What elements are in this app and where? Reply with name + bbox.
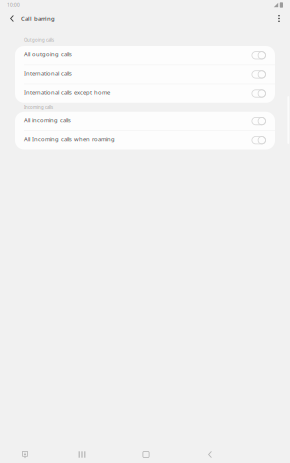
- button[interactable]: All outgoing calls: [15, 46, 275, 65]
- staticText: International calls: [24, 69, 72, 77]
- staticText: Incoming calls: [24, 104, 53, 110]
- button[interactable]: All Incoming calls when roaming: [15, 131, 275, 149]
- button[interactable]: Back: [178, 446, 242, 463]
- staticText: International calls except home: [24, 88, 110, 96]
- button[interactable]: Home: [114, 446, 178, 463]
- button[interactable]: International calls: [15, 65, 275, 84]
- button[interactable]: International calls except home: [15, 84, 275, 103]
- button[interactable]: More options: [272, 10, 290, 26]
- button[interactable]: Hide keyboard: [0, 446, 50, 463]
- staticText: All incoming calls: [24, 116, 71, 124]
- staticText: All outgoing calls: [24, 50, 72, 58]
- button[interactable]: All incoming calls: [15, 112, 275, 130]
- staticText: Call barring: [21, 14, 55, 22]
- button[interactable]: Recent apps: [50, 446, 114, 463]
- staticText: Outgoing calls: [24, 37, 54, 43]
- staticText: 10:00: [7, 2, 20, 8]
- staticText: All Incoming calls when roaming: [24, 135, 115, 143]
- button[interactable]: Back: [0, 10, 20, 26]
